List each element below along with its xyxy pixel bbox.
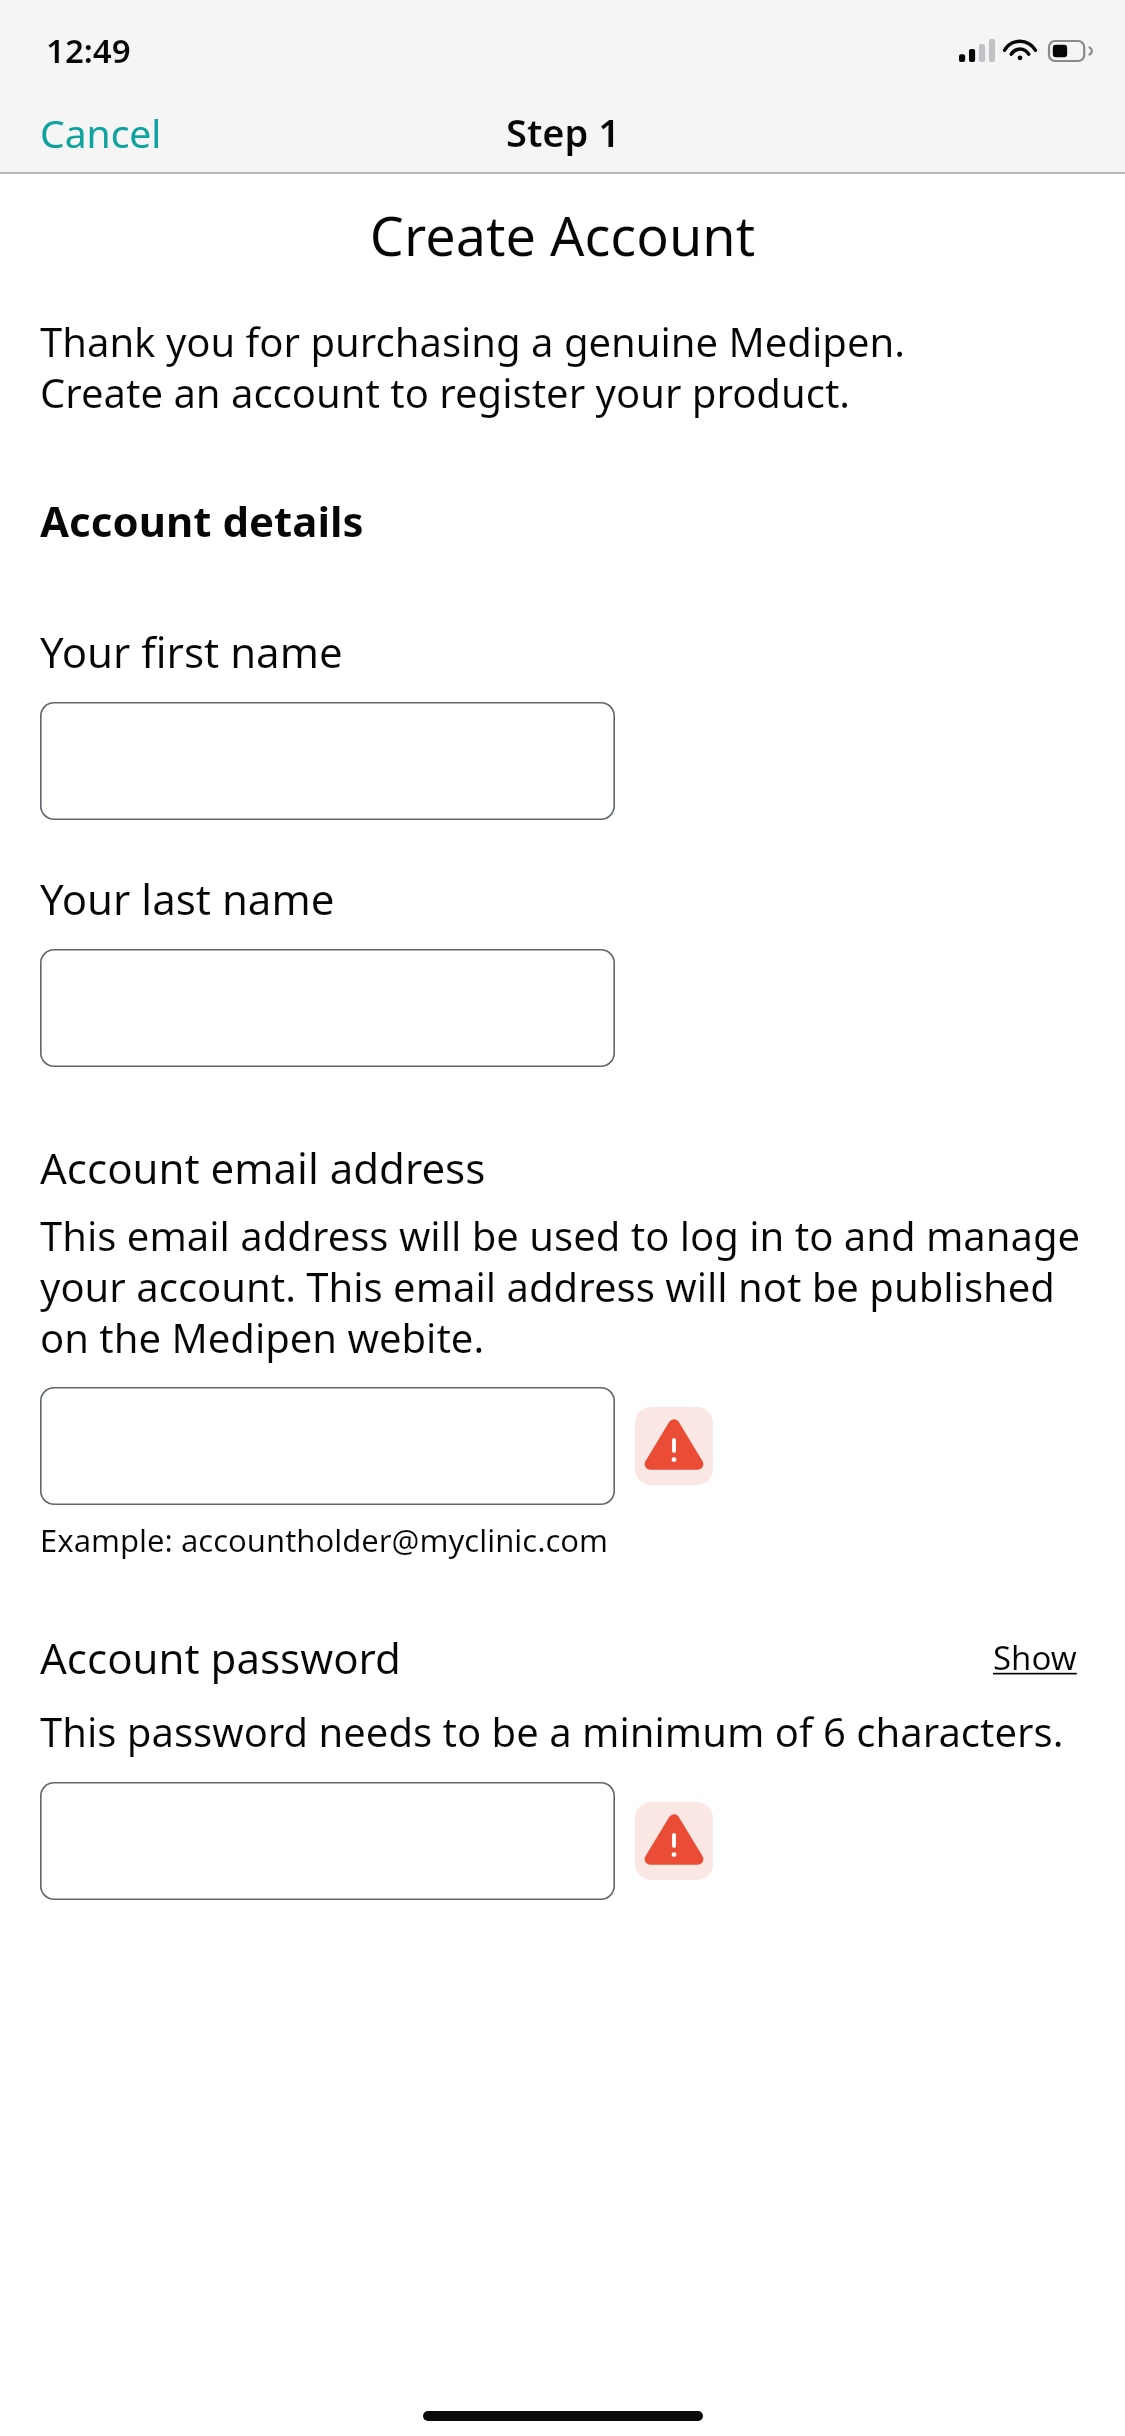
staticText: Create Account xyxy=(0,198,1125,272)
staticText: This email address will be used to log i… xyxy=(40,1208,1095,1365)
staticText: Account details xyxy=(40,492,364,549)
other: Error xyxy=(635,1802,713,1880)
staticText: Account password xyxy=(40,1629,401,1686)
staticText: Example: accountholder@myclinic.com xyxy=(40,1519,609,1561)
staticText: Show xyxy=(993,1635,1077,1680)
staticText: Cancel xyxy=(40,106,162,159)
button[interactable] xyxy=(40,1387,615,1505)
staticText: 12:49 xyxy=(46,28,131,73)
staticText: Your first name xyxy=(40,623,343,680)
button[interactable] xyxy=(40,949,615,1067)
staticText: Step 1 xyxy=(506,106,620,158)
button[interactable]: Cancel xyxy=(0,96,186,169)
staticText: Account email address xyxy=(40,1139,486,1196)
staticText: This password needs to be a minimum of 6… xyxy=(40,1704,1064,1758)
staticText: Thank you for purchasing a genuine Medip… xyxy=(40,314,905,420)
other: Error xyxy=(635,1407,713,1485)
staticText: Your last name xyxy=(40,870,335,927)
button[interactable] xyxy=(40,702,615,820)
button[interactable]: Show xyxy=(985,1627,1085,1688)
button[interactable] xyxy=(40,1782,615,1900)
